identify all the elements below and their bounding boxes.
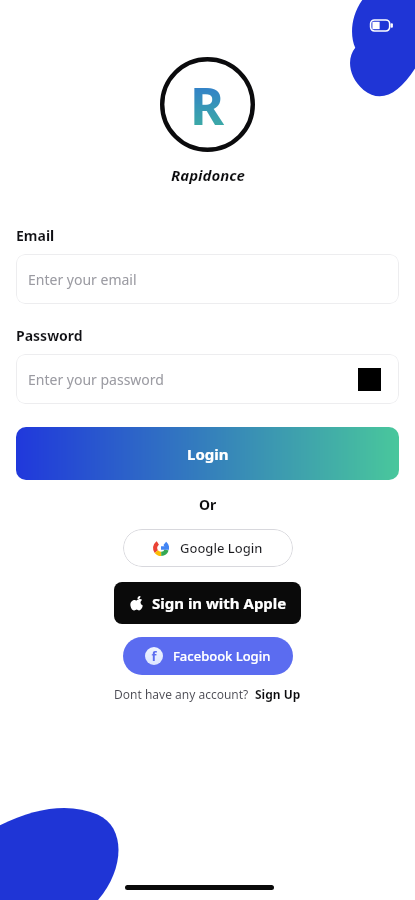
staticText: Facebook Login — [173, 647, 271, 665]
staticText: Rapidonce — [171, 165, 245, 185]
button[interactable]: Apple — [114, 582, 301, 624]
button[interactable]: Google — [123, 529, 293, 567]
staticText: Sign in with Apple — [152, 593, 287, 613]
button[interactable]: Login — [16, 427, 399, 480]
staticText: Login — [187, 444, 229, 464]
staticText: Password — [16, 326, 83, 345]
other: Apple — [129, 596, 144, 611]
staticText: Enter your password — [28, 370, 164, 389]
staticText: Enter your email — [28, 270, 137, 289]
button[interactable]: Facebook — [123, 637, 293, 675]
button[interactable]: Sign Up — [255, 686, 301, 702]
staticText: Sign Up — [255, 686, 301, 702]
other: Facebook — [145, 647, 163, 665]
button[interactable]: Enter your email — [16, 254, 399, 304]
button[interactable]: Enter your password — [16, 354, 399, 404]
staticText: Dont have any account? — [114, 686, 249, 702]
staticText: Google Login — [180, 539, 263, 557]
staticText: Email — [16, 226, 55, 245]
staticText: R — [190, 69, 225, 140]
staticText: f — [151, 647, 157, 665]
staticText: Or — [199, 495, 217, 514]
other: Google — [153, 540, 169, 556]
